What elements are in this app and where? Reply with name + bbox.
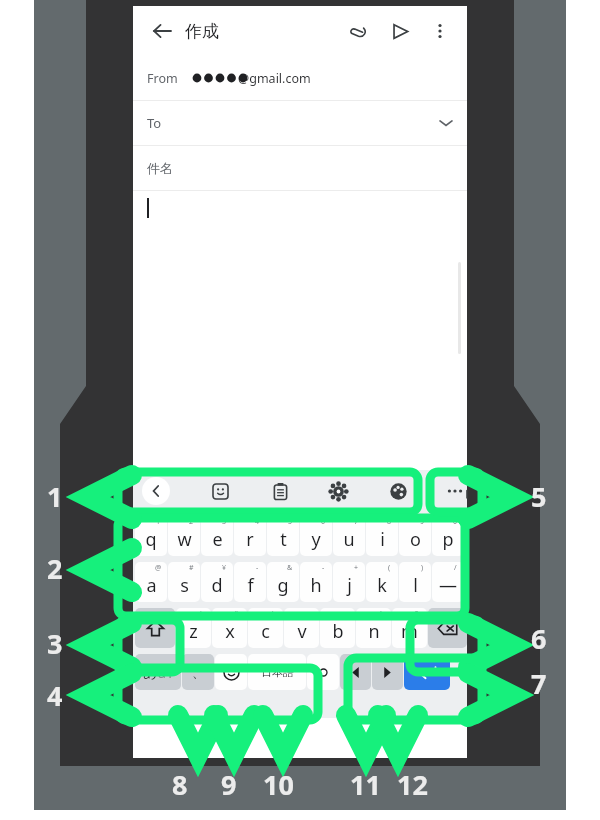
button[interactable]: Back — [145, 14, 179, 48]
button[interactable]: More tools — [442, 476, 467, 506]
button[interactable]: # — [168, 562, 200, 602]
button[interactable]: Switch input mode — [135, 654, 181, 690]
staticText: 8 — [387, 517, 392, 527]
staticText: - — [322, 563, 325, 573]
staticText: To — [147, 114, 162, 132]
staticText: n — [368, 619, 380, 644]
button[interactable]: ) — [399, 562, 431, 602]
staticText: 9 — [221, 766, 237, 803]
button[interactable]: To — [133, 101, 467, 145]
staticText: j — [347, 573, 352, 598]
staticText: 0 — [453, 517, 458, 527]
staticText: 1 — [47, 478, 63, 515]
button[interactable]: 1 — [135, 516, 167, 556]
staticText: 2 — [189, 517, 194, 527]
staticText: k — [377, 573, 387, 598]
button[interactable]: 日本語 — [248, 654, 306, 690]
staticText: ! — [380, 609, 382, 619]
button[interactable]: 0 — [432, 516, 464, 556]
staticText: q — [145, 527, 157, 552]
button[interactable]: Emoji — [215, 654, 247, 690]
button[interactable]: ( — [366, 562, 398, 602]
button[interactable]: Backspace — [428, 608, 467, 648]
button[interactable]: Attach file — [341, 14, 375, 48]
button[interactable]: 4 — [234, 516, 266, 556]
staticText: w — [177, 527, 192, 552]
button[interactable]: - — [300, 562, 332, 602]
staticText: ) — [421, 563, 424, 573]
staticText: ( — [388, 563, 391, 573]
staticText: 6 — [321, 517, 326, 527]
staticText: 件名 — [147, 160, 173, 176]
button[interactable]: 6 — [300, 516, 332, 556]
staticText: 4 — [255, 517, 260, 527]
staticText: 9 — [420, 517, 425, 527]
staticText: s — [180, 573, 189, 598]
button[interactable]: More options — [425, 16, 455, 46]
staticText: o — [410, 527, 421, 552]
staticText: v — [297, 619, 307, 644]
staticText: h — [310, 573, 322, 598]
button[interactable]: / — [432, 562, 464, 602]
staticText: f — [247, 573, 254, 598]
staticText: u — [343, 527, 355, 552]
button[interactable] — [307, 654, 339, 690]
button[interactable]: 件名 — [133, 146, 467, 190]
staticText: @gmail.com — [238, 70, 311, 87]
staticText: z — [189, 619, 198, 644]
staticText: 5 — [531, 478, 547, 515]
staticText: t — [280, 527, 287, 552]
staticText: r — [246, 527, 254, 552]
button[interactable]: + — [333, 562, 365, 602]
button[interactable]: 7 — [333, 516, 365, 556]
button[interactable]: 9 — [399, 516, 431, 556]
button[interactable]: 8 — [366, 516, 398, 556]
staticText: @ — [155, 563, 162, 573]
button[interactable]: ' — [248, 608, 283, 648]
staticText: ; — [344, 609, 346, 619]
staticText: 作成 — [185, 21, 219, 42]
button[interactable]: ! — [356, 608, 391, 648]
button[interactable]: " — [212, 608, 247, 648]
button[interactable]: & — [267, 562, 299, 602]
staticText: 8 — [172, 766, 188, 803]
staticText: 1 — [156, 517, 161, 527]
button[interactable]: 5 — [267, 516, 299, 556]
button[interactable]: * — [176, 608, 211, 648]
staticText: From — [147, 70, 178, 87]
staticText: 12 — [397, 766, 428, 803]
staticText: x — [225, 619, 235, 644]
button[interactable]: ; — [320, 608, 355, 648]
staticText: m — [401, 619, 418, 644]
button[interactable]: Enter — [404, 654, 450, 690]
button[interactable]: ? — [392, 608, 427, 648]
button[interactable]: 、 — [182, 654, 214, 690]
staticText: : — [308, 609, 310, 619]
button[interactable]: Clipboard — [265, 476, 295, 506]
button[interactable]: Settings — [323, 476, 353, 506]
staticText: 6 — [531, 620, 547, 657]
staticText: d — [211, 573, 223, 598]
staticText: l — [413, 573, 418, 598]
button[interactable]: 3 — [201, 516, 233, 556]
staticText: a — [146, 573, 157, 598]
button[interactable]: Stickers — [205, 476, 235, 506]
staticText: i — [380, 527, 385, 552]
staticText: 4 — [47, 677, 63, 714]
button[interactable]: 2 — [168, 516, 200, 556]
button[interactable]: Send — [383, 14, 417, 48]
staticText: & — [287, 563, 293, 573]
button[interactable]: : — [284, 608, 319, 648]
button[interactable]: @ — [135, 562, 167, 602]
staticText: y — [311, 527, 321, 552]
button[interactable]: From — [133, 56, 467, 100]
button[interactable]: Collapse toolbar — [142, 477, 170, 505]
button[interactable]: Shift — [135, 608, 175, 648]
button[interactable]: Move cursor left — [340, 654, 371, 690]
staticText: - — [256, 563, 259, 573]
button[interactable]: Themes — [383, 476, 413, 506]
staticText: b — [332, 619, 344, 644]
button[interactable]: Move cursor right — [372, 654, 403, 690]
button[interactable]: - — [234, 562, 266, 602]
button[interactable]: ¥ — [201, 562, 233, 602]
